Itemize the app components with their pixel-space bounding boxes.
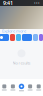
staticText: No results [12,60,30,66]
button[interactable]: Suggestion [16,34,21,41]
staticText: ••• [34,0,40,6]
button[interactable]: Saved [26,79,34,96]
button[interactable]: Discover [17,79,26,96]
button[interactable]: More [34,79,43,96]
button[interactable]: Suggestion [10,34,15,41]
button[interactable]: Suggestion [0,34,9,41]
button[interactable]: Suggestion [39,34,43,41]
button[interactable]: Home [0,79,9,96]
button[interactable]: Suggestion [22,34,32,41]
staticText: 9:41 [3,0,13,7]
staticText: Explore more [2,28,26,34]
button[interactable]: Search [9,79,17,96]
button[interactable]: Suggestion [33,34,38,41]
